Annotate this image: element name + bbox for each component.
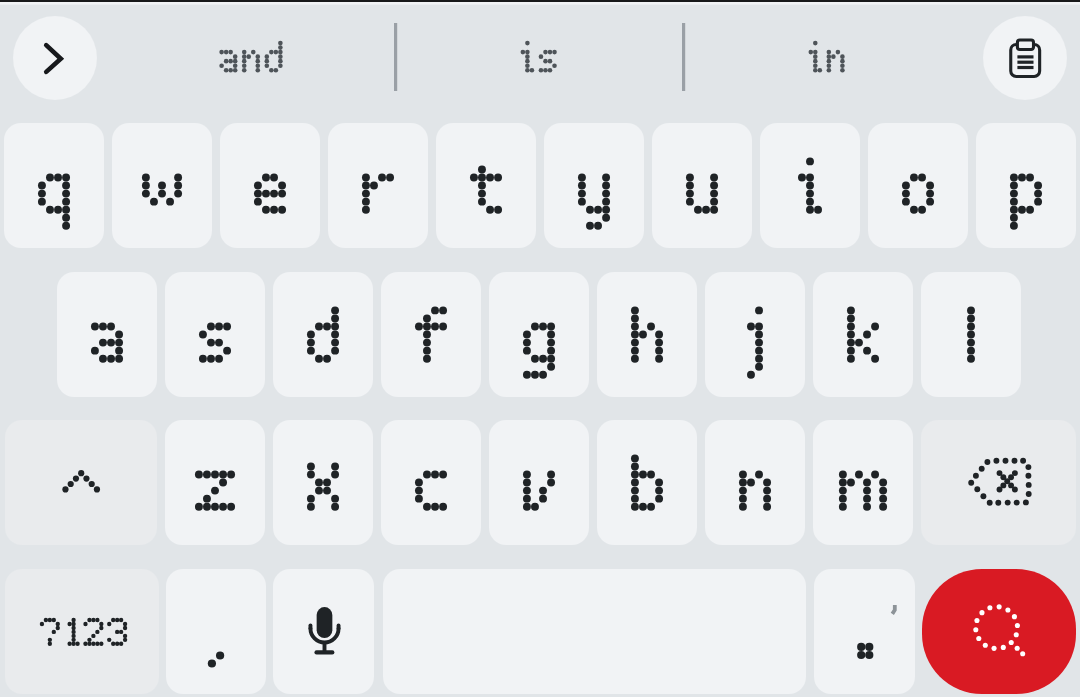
button[interactable] [107, 2, 393, 115]
button[interactable] [399, 2, 681, 115]
button[interactable] [165, 420, 265, 545]
button[interactable] [687, 2, 975, 115]
button[interactable]: Backspace [921, 420, 1076, 545]
button[interactable] [652, 123, 752, 248]
button[interactable]: Search [922, 569, 1076, 694]
button[interactable]: Comma [166, 569, 266, 694]
button[interactable] [4, 123, 104, 248]
button[interactable] [489, 420, 589, 545]
button[interactable] [544, 123, 644, 248]
button[interactable]: Period [814, 569, 915, 694]
button[interactable] [760, 123, 860, 248]
button[interactable] [976, 123, 1076, 248]
button[interactable] [705, 272, 805, 397]
button[interactable]: Shift [5, 420, 157, 545]
button[interactable] [112, 123, 212, 248]
button[interactable] [220, 123, 320, 248]
button[interactable]: Expand suggestions [13, 16, 97, 100]
button[interactable] [489, 272, 589, 397]
button[interactable] [813, 272, 913, 397]
button[interactable] [273, 420, 373, 545]
button[interactable] [436, 123, 536, 248]
button[interactable] [705, 420, 805, 545]
button[interactable] [597, 420, 697, 545]
button[interactable]: Voice input [273, 569, 374, 694]
button[interactable] [328, 123, 428, 248]
button[interactable] [273, 272, 373, 397]
button[interactable] [868, 123, 968, 248]
button[interactable] [813, 420, 913, 545]
button[interactable]: Clipboard [983, 16, 1067, 100]
button[interactable] [57, 272, 157, 397]
button[interactable] [597, 272, 697, 397]
button[interactable] [5, 569, 159, 694]
button[interactable] [165, 272, 265, 397]
button[interactable] [381, 420, 481, 545]
button[interactable] [921, 272, 1021, 397]
button[interactable] [381, 272, 481, 397]
